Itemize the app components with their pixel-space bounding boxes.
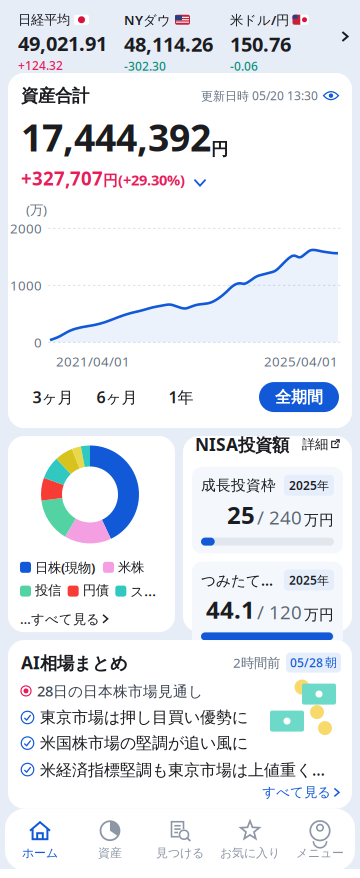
staticText: 48,114.26 (124, 31, 213, 57)
staticText: 1年 (168, 386, 193, 408)
staticText: …すべて見る (20, 610, 100, 628)
staticText: 投信 (35, 582, 61, 600)
button[interactable]: NYダウ (124, 3, 220, 69)
staticText: 万円 (304, 511, 334, 529)
staticText: 米ドル/円 (230, 11, 289, 29)
staticText: 2025年 (289, 572, 329, 588)
staticText: NISA投資額 (195, 433, 289, 456)
staticText: 円(+29.30%) (103, 170, 185, 190)
staticText: つみたて投資枠 (201, 570, 284, 590)
staticText: +124.32 (18, 57, 63, 73)
staticText: 米経済指標堅調も東京市場は上値重く… (40, 759, 325, 780)
staticText: ホーム (22, 846, 58, 860)
staticText: 1000 (10, 276, 42, 294)
staticText: 2時間前 (233, 654, 280, 671)
staticText: 150.76 (230, 31, 291, 57)
staticText: お気に入り (220, 846, 280, 860)
staticText: 49,021.91 (18, 30, 107, 56)
staticText: 成長投資枠 (201, 476, 276, 494)
staticText: 更新日時 05/20 13:30 (201, 88, 318, 104)
staticText: 資産 (98, 846, 122, 860)
staticText: 6ヶ月 (96, 386, 137, 408)
staticText: 2000 (10, 219, 42, 237)
staticText: 見つける (156, 846, 204, 860)
button[interactable]: すべて見る (8, 780, 352, 809)
staticText: 2025/04/01 (264, 352, 338, 370)
staticText: 東京市場は押し目買い優勢に (40, 708, 248, 727)
button[interactable]: 米ドル/円 (230, 3, 326, 69)
staticText: / 120 (257, 600, 302, 624)
button[interactable]: 1年 (149, 382, 213, 412)
button[interactable]: …すべて見る (8, 600, 175, 640)
staticText: 3ヶ月 (32, 386, 73, 408)
staticText: 44.1 (206, 594, 255, 625)
staticText: メニュー (296, 846, 344, 860)
staticText: 万円 (304, 606, 334, 624)
staticText: 2021/04/01 (56, 352, 130, 370)
staticText: スイープ (130, 582, 156, 600)
button[interactable]: ホーム (5, 813, 75, 867)
staticText: +327,707 (21, 166, 103, 191)
button[interactable]: 3ヶ月 (21, 382, 85, 412)
staticText: 17,444,392 (21, 112, 211, 162)
staticText: NYダウ (124, 11, 171, 29)
button[interactable]: More markets (336, 3, 354, 69)
staticText: 円債 (83, 582, 108, 600)
staticText: 25 (227, 499, 255, 531)
staticText: -302.30 (124, 58, 166, 74)
staticText: AI相場まとめ (21, 651, 128, 674)
staticText: 2025年 (289, 477, 329, 493)
button[interactable]: 詳細 (302, 436, 340, 452)
button[interactable]: 全期間 (259, 382, 339, 412)
staticText: すべて見る (262, 784, 331, 801)
button[interactable]: Toggle balance visibility (318, 87, 344, 105)
staticText: 朝 (325, 655, 337, 670)
staticText: 0 (34, 333, 42, 351)
staticText: 円 (211, 139, 228, 160)
staticText: 日株(現物) (35, 558, 95, 576)
staticText: 全期間 (275, 387, 323, 407)
staticText: 05/28 (290, 655, 323, 671)
staticText: / 240 (257, 505, 302, 530)
staticText: 資産合計 (21, 85, 89, 106)
staticText: 米国株市場の堅調が追い風に (40, 733, 248, 753)
staticText: 28日の日本株市場見通し (37, 681, 203, 701)
staticText: 詳細 (302, 436, 328, 452)
staticText: 日経平均 (18, 12, 70, 28)
staticText: 米株 (118, 559, 144, 575)
button[interactable]: 日経平均 (18, 3, 114, 69)
button[interactable]: Show breakdown (185, 175, 215, 191)
button[interactable]: 資産 (75, 813, 145, 867)
button[interactable]: 6ヶ月 (85, 382, 149, 412)
staticText: (万) (26, 201, 47, 218)
button[interactable]: お気に入り (215, 813, 285, 867)
staticText: -0.06 (230, 58, 258, 74)
button[interactable]: メニュー (285, 813, 355, 867)
button[interactable]: 見つける (145, 813, 215, 867)
